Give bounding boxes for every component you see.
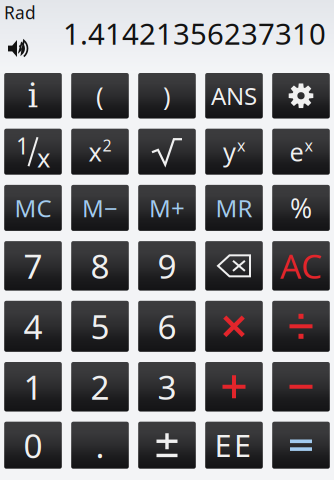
- button[interactable]: 7: [4, 241, 62, 291]
- staticText: e: [289, 135, 303, 168]
- staticText: 1: [16, 131, 29, 161]
- staticText: M−: [82, 192, 118, 224]
- button[interactable]: 0: [4, 422, 62, 469]
- button[interactable]: ANS: [205, 73, 263, 118]
- staticText: 7: [23, 244, 42, 288]
- staticText: 8: [90, 244, 109, 288]
- button[interactable]: [272, 301, 330, 352]
- staticText: 5: [90, 304, 109, 348]
- button[interactable]: 5: [71, 301, 129, 352]
- staticText: 2: [90, 365, 109, 409]
- staticText: MR: [215, 192, 252, 224]
- staticText: AC: [280, 244, 322, 288]
- staticText: MC: [14, 192, 51, 224]
- staticText: %: [290, 190, 312, 226]
- staticText: 6: [157, 304, 176, 348]
- button[interactable]: [138, 129, 196, 175]
- staticText: 4: [23, 304, 42, 348]
- button[interactable]: 3: [138, 362, 196, 411]
- staticText: 3: [157, 365, 176, 409]
- button[interactable]: [205, 301, 263, 352]
- button[interactable]: e: [272, 129, 330, 175]
- button[interactable]: [272, 422, 330, 469]
- staticText: ): [163, 79, 171, 112]
- button[interactable]: 9: [138, 241, 196, 291]
- button[interactable]: 1: [4, 129, 62, 175]
- staticText: Rad: [4, 1, 36, 24]
- button[interactable]: .: [71, 422, 129, 469]
- button[interactable]: (: [71, 73, 129, 118]
- staticText: 1.41421356237310: [63, 14, 326, 53]
- staticText: 9: [157, 244, 176, 288]
- button[interactable]: [205, 362, 263, 411]
- button[interactable]: MC: [4, 185, 62, 231]
- staticText: x: [304, 135, 312, 156]
- button[interactable]: 8: [71, 241, 129, 291]
- staticText: (: [96, 79, 104, 112]
- staticText: x: [37, 141, 50, 174]
- button[interactable]: EE: [205, 422, 263, 469]
- button[interactable]: [205, 241, 263, 291]
- button[interactable]: M+: [138, 185, 196, 231]
- button[interactable]: [138, 422, 196, 469]
- button[interactable]: AC: [272, 241, 330, 291]
- button[interactable]: 2: [71, 362, 129, 411]
- staticText: .: [95, 423, 104, 467]
- staticText: M+: [149, 192, 185, 224]
- button[interactable]: %: [272, 185, 330, 231]
- staticText: x: [88, 135, 101, 168]
- staticText: 0: [23, 423, 42, 467]
- button[interactable]: M−: [71, 185, 129, 231]
- staticText: 1: [23, 365, 42, 409]
- button[interactable]: 1: [4, 362, 62, 411]
- staticText: EE: [215, 425, 251, 465]
- staticText: ANS: [211, 80, 257, 112]
- button[interactable]: 6: [138, 301, 196, 352]
- staticText: 2: [102, 135, 111, 156]
- staticText: i: [27, 76, 38, 115]
- staticText: y: [223, 135, 236, 168]
- button[interactable]: MR: [205, 185, 263, 231]
- button[interactable]: x: [71, 129, 129, 175]
- button[interactable]: ): [138, 73, 196, 118]
- staticText: x: [237, 135, 245, 156]
- button[interactable]: i: [4, 73, 62, 118]
- button[interactable]: y: [205, 129, 263, 175]
- button[interactable]: [272, 73, 330, 118]
- button[interactable]: 4: [4, 301, 62, 352]
- button[interactable]: [272, 362, 330, 411]
